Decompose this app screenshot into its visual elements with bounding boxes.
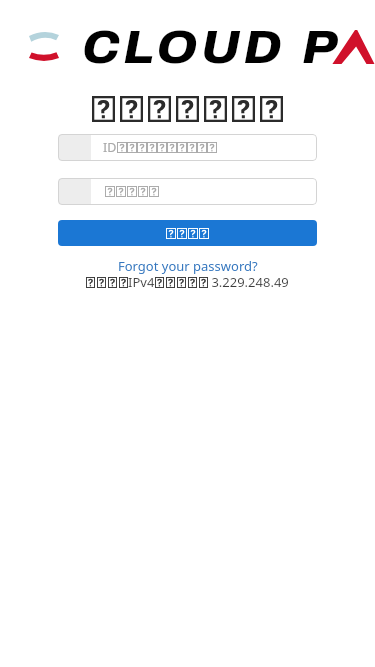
button[interactable]: Log in — [58, 220, 317, 246]
button[interactable]: Forgot your password? — [118, 257, 258, 275]
button[interactable]: Password input field — [58, 178, 317, 205]
staticText: P — [302, 22, 342, 73]
staticText: 3.229.248.49 — [208, 273, 289, 291]
staticText: CLOUD — [82, 22, 285, 73]
staticText: ID — [103, 139, 117, 156]
button[interactable]: ID input field — [58, 134, 317, 161]
staticText: IPv4 — [128, 273, 155, 291]
